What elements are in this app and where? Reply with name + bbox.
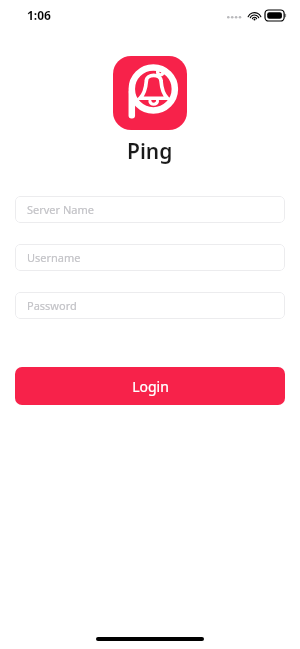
button[interactable]: Password xyxy=(15,292,285,319)
button[interactable]: Server Name xyxy=(15,196,285,223)
staticText: Login xyxy=(132,377,169,396)
staticText: Server Name xyxy=(27,202,95,217)
button[interactable]: Login xyxy=(15,367,285,405)
button[interactable]: Username xyxy=(15,244,285,271)
staticText: Password xyxy=(27,298,77,313)
staticText: Ping xyxy=(127,137,173,166)
other: Ping logo xyxy=(113,56,187,130)
staticText: Username xyxy=(27,250,81,265)
staticText: 1:06 xyxy=(27,7,51,23)
